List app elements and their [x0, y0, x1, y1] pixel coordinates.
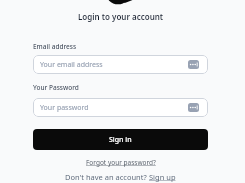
button[interactable]: Your email address: [33, 55, 208, 74]
staticText: Don't have an account?: [65, 172, 149, 182]
staticText: Login to your account: [78, 11, 164, 22]
button[interactable]: Sign up: [149, 172, 176, 182]
staticText: Your email address: [40, 60, 103, 70]
button[interactable]: Sign in: [33, 129, 208, 150]
staticText: Your Password: [33, 83, 79, 92]
staticText: Email address: [33, 42, 77, 51]
staticText: Your password: [40, 103, 89, 113]
button[interactable]: Your password: [33, 98, 208, 117]
staticText: Sign in: [109, 135, 132, 145]
button[interactable]: Forgot your password?: [86, 158, 156, 167]
